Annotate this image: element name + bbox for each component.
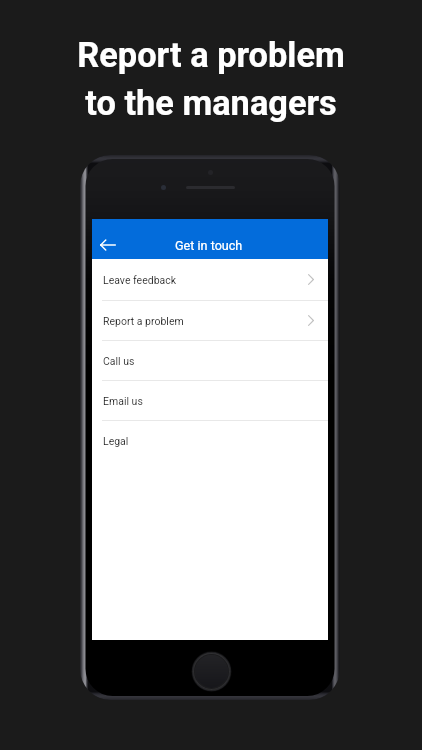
button[interactable]: Legal (92, 421, 328, 461)
staticText: Report a problem to the managers (0, 35, 422, 123)
button[interactable]: Back (94, 231, 122, 259)
button[interactable]: Report a problem (92, 301, 328, 341)
staticText: Leave feedback (103, 274, 177, 286)
staticText: Call us (103, 355, 135, 367)
staticText: Report a problem (103, 315, 184, 327)
button[interactable]: Call us (92, 341, 328, 381)
button[interactable]: Email us (92, 381, 328, 421)
staticText: Legal (103, 435, 129, 447)
button[interactable]: Leave feedback (92, 259, 328, 301)
staticText: Get in touch (175, 238, 243, 253)
staticText: Email us (103, 395, 143, 407)
